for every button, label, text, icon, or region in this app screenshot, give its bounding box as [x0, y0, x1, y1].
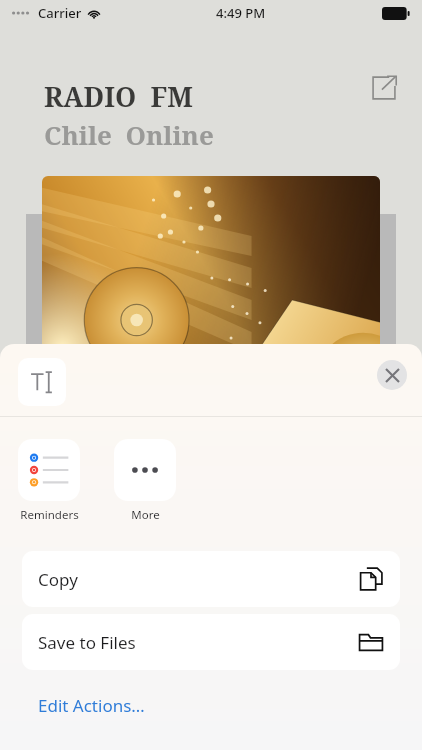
staticText: More	[131, 507, 160, 523]
staticText: 4:49 PM	[216, 4, 266, 22]
staticText: Copy	[38, 568, 78, 591]
staticText: RADIO FM	[44, 78, 193, 115]
staticText: Chile Online	[44, 117, 214, 152]
button[interactable]: Copy	[22, 551, 400, 607]
staticText: Save to Files	[38, 631, 136, 654]
button[interactable]: Save to Files	[22, 614, 400, 670]
button[interactable]: Preview	[18, 358, 66, 406]
staticText: Reminders	[20, 507, 79, 523]
button[interactable]: Export	[364, 68, 404, 108]
button[interactable]: Edit Actions…	[0, 686, 422, 724]
button[interactable]: Reminders	[18, 439, 80, 523]
staticText: Edit Actions…	[38, 694, 145, 717]
staticText: Carrier	[38, 4, 82, 22]
button[interactable]: More	[114, 439, 176, 523]
button[interactable]: Close	[377, 360, 407, 390]
